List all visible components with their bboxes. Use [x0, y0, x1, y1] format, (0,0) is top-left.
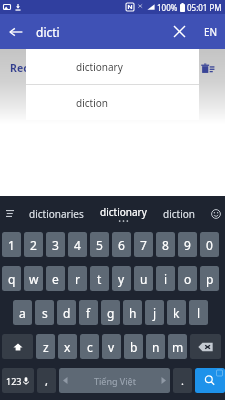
button[interactable]: p	[200, 266, 219, 291]
button[interactable]: b	[124, 334, 143, 359]
staticText: c	[87, 339, 93, 355]
staticText: k	[173, 305, 180, 321]
button[interactable]: Search	[195, 368, 225, 393]
button[interactable]: Emoji	[206, 196, 225, 231]
button[interactable]: Tiếng Việt	[59, 368, 170, 393]
button[interactable]: Clear	[162, 14, 196, 49]
button[interactable]: w	[24, 266, 43, 291]
staticText: a	[19, 305, 26, 321]
staticText: s	[42, 305, 48, 321]
button[interactable]: z	[36, 334, 55, 359]
button[interactable]: 6	[112, 232, 131, 257]
button[interactable]: y	[112, 266, 131, 291]
staticText: 5	[96, 237, 103, 253]
button[interactable]: c	[80, 334, 99, 359]
button[interactable]: x	[58, 334, 77, 359]
staticText: v	[108, 339, 115, 355]
button[interactable]: diction	[26, 85, 199, 120]
button[interactable]: Shift	[2, 334, 33, 359]
button[interactable]: ,	[37, 368, 56, 393]
button[interactable]: l	[189, 300, 208, 325]
button[interactable]: Backspace	[190, 334, 221, 359]
staticText: diction	[163, 207, 195, 221]
staticText: dictionaries	[29, 207, 84, 221]
button[interactable]: Back	[0, 14, 32, 49]
staticText: j	[153, 305, 157, 321]
staticText: n	[152, 339, 160, 355]
staticText: 7	[140, 237, 147, 253]
button[interactable]: j	[145, 300, 164, 325]
staticText: dictionary	[100, 205, 147, 219]
staticText: l	[197, 305, 201, 321]
staticText: d	[63, 305, 71, 321]
staticText: ,	[45, 373, 48, 388]
staticText: o	[184, 271, 192, 287]
button[interactable]: n	[146, 334, 165, 359]
staticText: w	[29, 271, 39, 287]
staticText: b	[130, 339, 138, 355]
button[interactable]: k	[167, 300, 186, 325]
staticText: 100%	[157, 2, 178, 13]
button[interactable]: 5	[90, 232, 109, 257]
staticText: e	[52, 271, 59, 287]
button[interactable]: diction	[152, 196, 206, 231]
button[interactable]: d	[57, 300, 76, 325]
staticText: 0	[206, 237, 213, 253]
button[interactable]: r	[68, 266, 87, 291]
staticText: 3	[52, 237, 59, 253]
button[interactable]: dictionary	[26, 49, 199, 84]
button[interactable]: 0	[200, 232, 219, 257]
button[interactable]: u	[134, 266, 153, 291]
button[interactable]: 2	[24, 232, 43, 257]
button[interactable]: t	[90, 266, 109, 291]
button[interactable]: a	[13, 300, 32, 325]
button[interactable]: o	[178, 266, 197, 291]
staticText: dicti	[36, 24, 60, 40]
staticText: m	[172, 339, 184, 355]
button[interactable]: m	[168, 334, 187, 359]
button[interactable]: 1	[2, 232, 21, 257]
staticText: .	[181, 373, 184, 388]
staticText: 9	[184, 237, 191, 253]
button[interactable]: 4	[68, 232, 87, 257]
staticText: q	[8, 271, 16, 287]
button[interactable]: s	[35, 300, 54, 325]
staticText: 05:01 PM	[187, 2, 222, 13]
staticText: t	[97, 271, 102, 287]
button[interactable]: 9	[178, 232, 197, 257]
button[interactable]: g	[101, 300, 120, 325]
staticText: Recent	[10, 61, 47, 75]
button[interactable]: v	[102, 334, 121, 359]
button[interactable]: h	[123, 300, 142, 325]
button[interactable]: f	[79, 300, 98, 325]
staticText: 8	[162, 237, 169, 253]
staticText: 6	[118, 237, 125, 253]
staticText: i	[164, 271, 168, 287]
button[interactable]: i	[156, 266, 175, 291]
button[interactable]: e	[46, 266, 65, 291]
staticText: x	[64, 339, 71, 355]
staticText: 123	[6, 375, 22, 387]
button[interactable]: dictionary	[94, 196, 152, 231]
button[interactable]: EN	[196, 14, 225, 49]
staticText: g	[107, 305, 115, 321]
button[interactable]: Delete history	[200, 60, 216, 76]
staticText: 4	[74, 237, 81, 253]
staticText: z	[43, 339, 49, 355]
button[interactable]: .	[173, 368, 192, 393]
staticText: Tiếng Việt	[94, 375, 136, 387]
staticText: p	[206, 271, 214, 287]
button[interactable]: 8	[156, 232, 175, 257]
button[interactable]: 3	[46, 232, 65, 257]
button[interactable]: dictionaries	[19, 196, 94, 231]
button[interactable]: q	[2, 266, 21, 291]
staticText: r	[75, 271, 80, 287]
staticText: y	[118, 271, 125, 287]
staticText: 2	[30, 237, 37, 253]
staticText: dictionary	[76, 60, 123, 74]
staticText: diction	[76, 96, 108, 110]
button[interactable]: Numbers and voice input	[2, 368, 34, 393]
button[interactable]: 7	[134, 232, 153, 257]
button[interactable]: Keyboard options	[0, 196, 19, 231]
staticText: 1	[8, 237, 15, 253]
